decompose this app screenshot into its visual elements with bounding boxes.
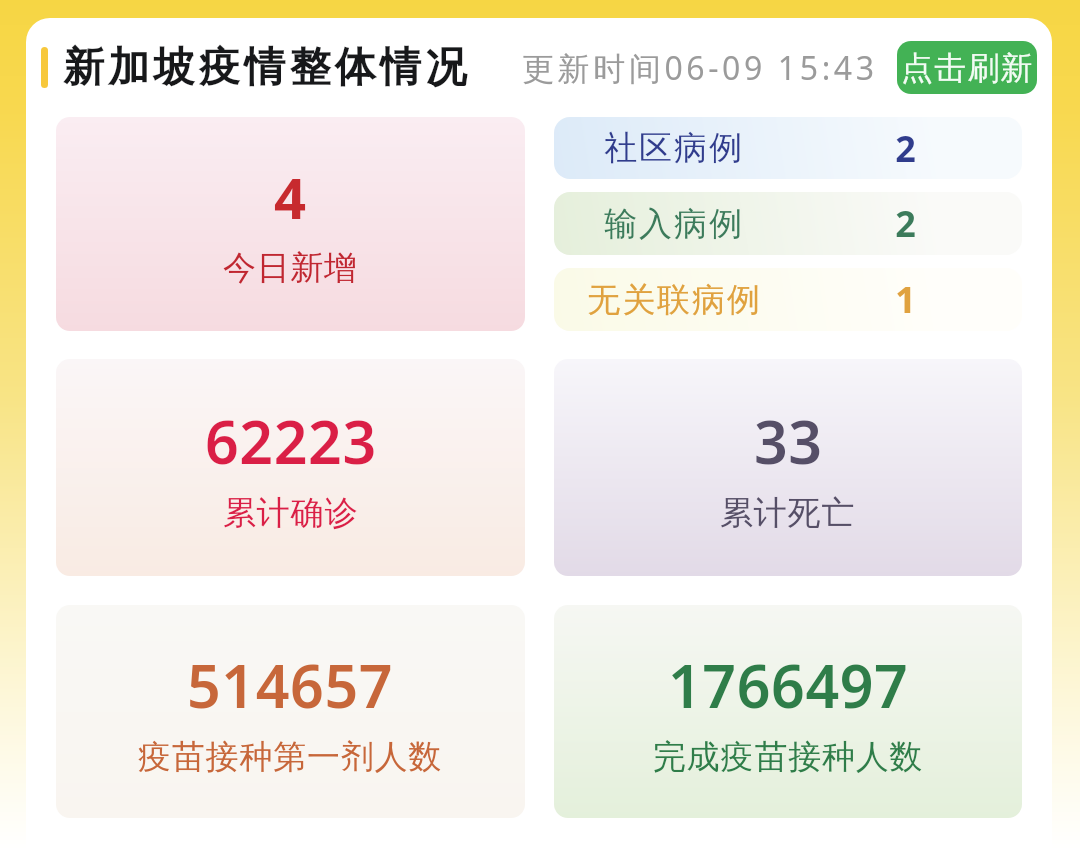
staticText: 完成疫苗接种人数 xyxy=(653,736,924,778)
staticText: 62223 xyxy=(205,401,377,481)
staticText: 累计确诊 xyxy=(223,492,359,534)
button[interactable]: 点击刷新 xyxy=(897,41,1037,94)
staticText: 2 xyxy=(895,124,916,173)
staticText: 新加坡疫情整体情况 xyxy=(63,42,471,94)
staticText: 输入病例 xyxy=(604,203,744,245)
button[interactable]: 社区病例 xyxy=(554,117,1022,179)
button[interactable]: 62223 xyxy=(56,359,525,576)
button[interactable]: 33 xyxy=(554,359,1022,576)
button[interactable]: 1766497 xyxy=(554,605,1022,818)
button[interactable]: 4 xyxy=(56,117,525,331)
button[interactable]: 514657 xyxy=(56,605,525,818)
staticText: 1766497 xyxy=(668,645,909,725)
staticText: 疫苗接种第一剂人数 xyxy=(138,736,443,778)
staticText: 33 xyxy=(754,401,823,481)
staticText: 累计死亡 xyxy=(720,492,856,534)
staticText: 1 xyxy=(895,275,916,324)
staticText: 点击刷新 xyxy=(901,48,1034,88)
staticText: 社区病例 xyxy=(604,127,744,169)
staticText: 无关联病例 xyxy=(587,279,762,321)
staticText: 514657 xyxy=(187,645,394,725)
staticText: 今日新增 xyxy=(223,247,358,289)
staticText: 更新时间06-09 15:43 xyxy=(522,46,878,90)
button[interactable]: 无关联病例 xyxy=(554,268,1022,331)
staticText: 4 xyxy=(274,159,307,235)
staticText: 2 xyxy=(895,199,916,248)
button[interactable]: 输入病例 xyxy=(554,192,1022,255)
